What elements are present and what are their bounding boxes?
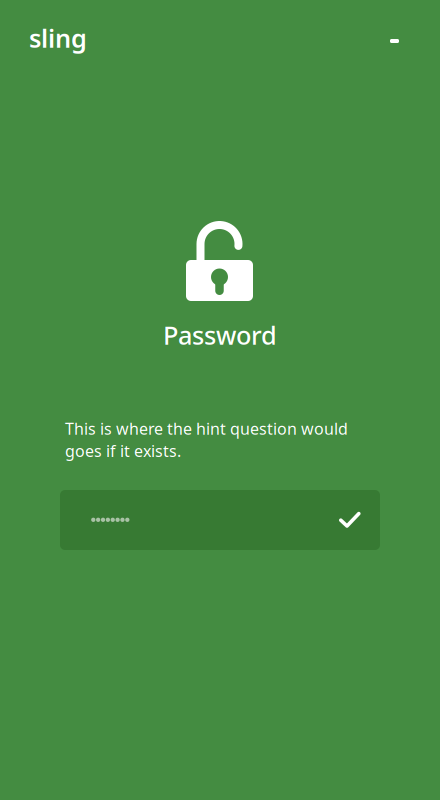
button[interactable]: Password [60, 490, 380, 550]
button[interactable]: Submit password [320, 490, 380, 550]
button[interactable]: sling [0, 11, 87, 65]
staticText: Password [163, 318, 277, 352]
staticText: This is where the hint question would go… [65, 418, 348, 461]
staticText: sling [29, 21, 87, 55]
button[interactable]: Minimize [374, 23, 415, 59]
